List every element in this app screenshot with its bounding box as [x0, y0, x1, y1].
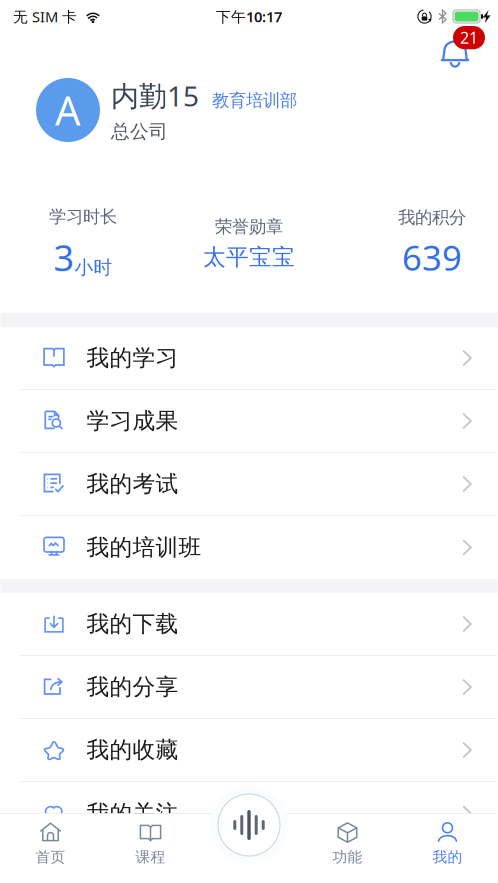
- button[interactable]: 我的学习: [0, 327, 497, 390]
- staticText: 学习成果: [86, 407, 178, 435]
- staticText: 3: [53, 233, 74, 281]
- button[interactable]: 我的: [397, 816, 497, 872]
- button[interactable]: Notifications: [432, 32, 476, 76]
- button[interactable]: 学习成果: [0, 390, 497, 453]
- staticText: 课程: [135, 848, 165, 866]
- staticText: 太平宝宝: [203, 243, 295, 271]
- staticText: 教育培训部: [212, 90, 297, 111]
- staticText: 我的学习: [86, 344, 178, 372]
- staticText: 639: [402, 234, 462, 280]
- staticText: 我的培训班: [86, 534, 201, 561]
- staticText: 荣誉勋章: [215, 216, 283, 237]
- staticText: 无 SIM 卡: [13, 7, 77, 26]
- staticText: 我的积分: [398, 207, 466, 228]
- staticText: 我的分享: [86, 673, 178, 701]
- button[interactable]: 我的下载: [0, 593, 497, 656]
- staticText: 下午10:17: [216, 7, 282, 26]
- staticText: 我的: [432, 848, 462, 866]
- button[interactable]: 我的分享: [0, 656, 497, 719]
- button[interactable]: 我的考试: [0, 453, 497, 516]
- staticText: A: [55, 83, 81, 136]
- staticText: 我的考试: [86, 470, 178, 498]
- button[interactable]: 我的培训班: [0, 516, 497, 579]
- staticText: 内勤15: [111, 77, 199, 114]
- staticText: 学习时长: [49, 206, 117, 227]
- button[interactable]: 课程: [100, 816, 200, 872]
- staticText: 我的收藏: [86, 736, 178, 764]
- button[interactable]: 我的收藏: [0, 719, 497, 782]
- staticText: 总公司: [111, 120, 168, 143]
- button[interactable]: Voice assistant: [209, 785, 289, 865]
- button[interactable]: 功能: [297, 816, 397, 872]
- staticText: 小时: [74, 256, 112, 279]
- staticText: 首页: [35, 848, 65, 866]
- staticText: 功能: [332, 848, 362, 866]
- staticText: 我的关注: [86, 800, 178, 827]
- staticText: 21: [460, 27, 478, 48]
- staticText: 我的下载: [86, 610, 178, 638]
- button[interactable]: 我的关注: [0, 782, 497, 845]
- button[interactable]: 首页: [0, 816, 100, 872]
